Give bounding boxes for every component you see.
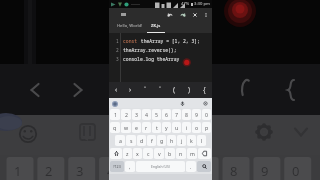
button[interactable]: 7 <box>172 109 181 120</box>
staticText: theArray.reverse(); <box>123 47 177 53</box>
button[interactable]: Backspace <box>198 148 211 159</box>
button[interactable]: Voice input <box>178 99 186 107</box>
staticText: q <box>113 124 117 131</box>
button[interactable]: Redo <box>176 8 189 21</box>
staticText: z <box>126 150 129 157</box>
staticText: ( <box>173 85 176 95</box>
staticText: theArray = [1, 2, 3]; <box>138 38 200 44</box>
button[interactable]: w <box>121 122 131 133</box>
button[interactable]: g <box>157 135 166 146</box>
staticText: 3 <box>76 162 84 180</box>
button[interactable]: s <box>126 135 136 146</box>
staticText: 7 <box>199 162 207 180</box>
button[interactable]: English (US) <box>136 161 185 172</box>
button[interactable]: Undo <box>163 8 176 21</box>
button[interactable]: f <box>147 135 156 146</box>
button[interactable]: ) <box>182 82 197 98</box>
button[interactable]: ?123 <box>110 161 124 172</box>
button[interactable]: . <box>186 161 196 172</box>
button[interactable]: i <box>182 122 191 133</box>
staticText: 3:30 pm <box>194 1 210 7</box>
button[interactable]: 0 <box>202 109 211 120</box>
staticText: 3 <box>135 111 138 118</box>
button[interactable]: Shift <box>110 148 122 159</box>
staticText: n <box>179 150 183 157</box>
button[interactable]: ( <box>167 82 182 98</box>
button[interactable]: Gboard <box>111 100 118 107</box>
button[interactable]: t <box>152 122 161 133</box>
staticText: . <box>190 163 192 170</box>
staticText: 3 <box>116 56 119 62</box>
staticText: c <box>147 150 150 157</box>
staticText: k <box>190 137 193 144</box>
button[interactable]: Keyboard settings <box>201 99 209 107</box>
staticText: ˅ <box>159 85 161 95</box>
button[interactable]: Hello, World! <box>115 21 144 33</box>
staticText: w <box>124 124 129 131</box>
staticText: › <box>129 85 132 95</box>
button[interactable]: 9 <box>192 109 201 120</box>
button[interactable]: u <box>172 122 181 133</box>
staticText: h <box>170 137 174 144</box>
button[interactable]: q <box>110 122 120 133</box>
staticText: x <box>136 150 139 157</box>
staticText: ˄ <box>144 85 146 95</box>
button[interactable]: j <box>177 135 186 146</box>
button[interactable]: e <box>132 122 141 133</box>
button[interactable]: ˅ <box>152 82 167 98</box>
button[interactable]: a <box>115 135 125 146</box>
staticText: 5 <box>155 111 158 118</box>
button[interactable]: k <box>187 135 196 146</box>
staticText: p <box>205 124 209 131</box>
button[interactable]: n <box>176 148 186 159</box>
button[interactable]: x <box>133 148 142 159</box>
button[interactable]: 5 <box>152 109 161 120</box>
button[interactable]: More options <box>201 8 210 21</box>
button[interactable]: 6 <box>162 109 171 120</box>
button[interactable]: 8 <box>182 109 191 120</box>
staticText: 1 <box>114 111 117 118</box>
button[interactable]: r <box>142 122 151 133</box>
staticText: 7 <box>175 111 178 118</box>
staticText: l <box>201 137 203 144</box>
button[interactable]: c <box>143 148 153 159</box>
button[interactable]: z <box>123 148 132 159</box>
button[interactable]: o <box>192 122 201 133</box>
button[interactable]: d <box>137 135 146 146</box>
button[interactable]: 3 <box>132 109 141 120</box>
staticText: o <box>195 124 199 131</box>
staticText: 6 <box>165 111 168 118</box>
button[interactable]: 4 <box>142 109 151 120</box>
staticText: j <box>181 137 183 144</box>
button[interactable]: , <box>125 161 135 172</box>
staticText: 8 <box>230 162 238 180</box>
staticText: i <box>186 124 188 131</box>
staticText: { <box>203 85 206 95</box>
button[interactable]: Navigation menu <box>118 9 129 20</box>
staticText: 2 <box>116 47 119 53</box>
button[interactable]: l <box>197 135 206 146</box>
button[interactable]: 2 <box>121 109 131 120</box>
button[interactable]: v <box>154 148 164 159</box>
staticText: e <box>135 124 138 131</box>
button[interactable]: › <box>123 82 137 98</box>
button[interactable]: 1 <box>110 109 120 120</box>
staticText: 4 <box>145 111 148 118</box>
button[interactable]: y <box>162 122 171 133</box>
staticText: 1 <box>14 162 22 180</box>
button[interactable]: ˄ <box>137 82 152 98</box>
button[interactable]: m <box>187 148 197 159</box>
staticText: Hello, World! <box>117 23 143 29</box>
button[interactable]: ZK.js <box>147 21 165 33</box>
button[interactable]: b <box>165 148 175 159</box>
button[interactable]: { <box>197 82 212 98</box>
staticText: a <box>119 137 122 144</box>
button[interactable]: Close <box>189 8 201 21</box>
button[interactable]: ‹ <box>109 82 123 98</box>
button[interactable]: Search <box>197 161 211 172</box>
staticText: m <box>190 150 195 157</box>
staticText: f <box>151 137 153 144</box>
staticText: ?123 <box>113 164 121 169</box>
button[interactable]: h <box>167 135 176 146</box>
button[interactable]: p <box>202 122 211 133</box>
